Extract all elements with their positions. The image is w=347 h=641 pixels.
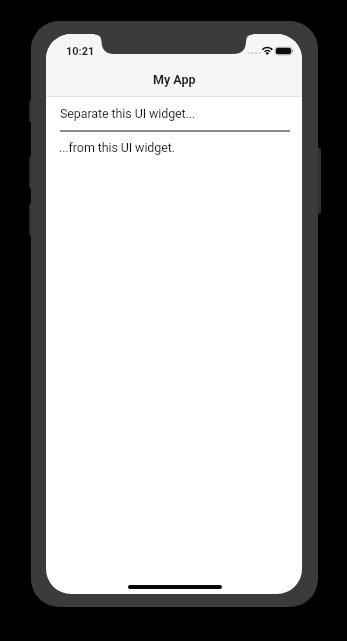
staticText: Separate this UI widget...: [60, 106, 196, 121]
staticText: ...from this UI widget.: [59, 140, 175, 155]
staticText: My App: [153, 72, 196, 87]
staticText: 10:21: [66, 45, 95, 58]
